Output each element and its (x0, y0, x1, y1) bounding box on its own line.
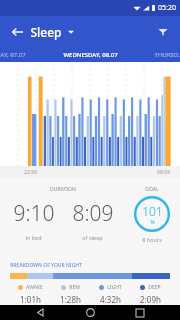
button[interactable]: AWAKE (10, 284, 50, 305)
button[interactable]: DEEP (130, 284, 170, 305)
staticText: Sleep (30, 24, 62, 40)
staticText: 22:59 (24, 169, 37, 176)
staticText: WEDNESDAY, 08.07 (63, 51, 118, 59)
staticText: BREAKDOWN OF YOUR NIGHT (10, 262, 82, 269)
staticText: of sleep (82, 234, 103, 241)
staticText: AWAKE (26, 284, 43, 291)
staticText: 101 (142, 203, 163, 219)
staticText: LIGHT (107, 284, 122, 291)
staticText: 4:32h (100, 294, 121, 305)
staticText: THURSD. (154, 51, 180, 59)
staticText: DURATION (50, 186, 76, 193)
staticText: AY, 07.07 (0, 51, 26, 59)
button[interactable] (10, 273, 170, 279)
staticText: GOAL (145, 186, 159, 193)
staticText: 08:04 (157, 169, 170, 176)
staticText: % (150, 219, 155, 226)
staticText: REM (69, 284, 80, 291)
button[interactable]: Recent apps (130, 305, 150, 320)
button[interactable]: Back (6, 21, 28, 43)
button[interactable]: Filter (152, 21, 174, 43)
staticText: 1:28h (60, 294, 81, 305)
staticText: 1:01h (20, 294, 41, 305)
button[interactable]: Home (80, 305, 100, 320)
staticText: 8:09 (72, 199, 114, 228)
staticText: 05:20 (158, 3, 176, 13)
staticText: 8 hours (142, 236, 162, 243)
button[interactable]: GOAL (134, 186, 170, 243)
staticText: 2:09h (140, 294, 161, 305)
staticText: DEEP (148, 284, 161, 291)
button[interactable]: Back (30, 305, 50, 320)
button[interactable]: LIGHT (90, 284, 130, 305)
button[interactable]: Sleep (30, 24, 74, 40)
button[interactable]: 8:09 (63, 199, 122, 241)
button[interactable]: 9:10 (4, 199, 63, 241)
staticText: 9:10 (13, 199, 55, 228)
staticText: in bed (25, 234, 42, 241)
button[interactable]: REM (50, 284, 90, 305)
